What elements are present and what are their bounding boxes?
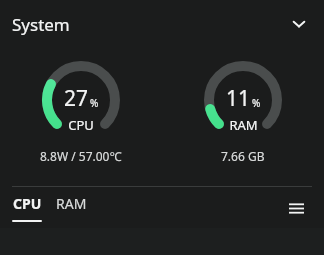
staticText: 11	[226, 84, 251, 113]
button[interactable]: Collapse	[284, 9, 314, 39]
staticText: CPU	[68, 116, 94, 134]
staticText: CPU	[13, 194, 42, 213]
staticText: 27	[64, 84, 89, 113]
staticText: RAM	[56, 194, 87, 213]
button[interactable]: RAM	[56, 190, 87, 226]
button[interactable]: CPU	[12, 190, 42, 226]
staticText: RAM	[229, 116, 258, 134]
staticText: %	[90, 96, 99, 110]
staticText: 8.8W / 57.00℃	[40, 148, 122, 164]
staticText: System	[12, 13, 70, 36]
staticText: %	[252, 96, 261, 110]
staticText: 7.66 GB	[221, 148, 265, 164]
button[interactable]: Menu	[280, 192, 312, 224]
button[interactable]: System	[0, 0, 324, 48]
